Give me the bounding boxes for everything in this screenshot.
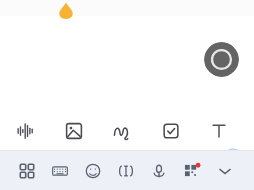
button[interactable]: Image (59, 116, 89, 146)
button[interactable]: Checklist (156, 116, 186, 146)
button[interactable]: Draw (107, 116, 137, 146)
button[interactable]: Voice input (144, 156, 174, 186)
button[interactable]: Hide keyboard (210, 156, 240, 186)
button[interactable]: Text (204, 116, 234, 146)
button[interactable]: Record (204, 42, 239, 77)
button[interactable]: Scan code (177, 156, 207, 186)
button[interactable]: Keyboard (45, 156, 75, 186)
button[interactable]: Ink colour (59, 1, 73, 19)
button[interactable]: Assistant (223, 147, 243, 167)
button[interactable]: Text cursor (111, 156, 141, 186)
button[interactable]: Emoji (78, 156, 108, 186)
button[interactable]: Audio (10, 116, 40, 146)
button[interactable]: Apps (12, 156, 42, 186)
